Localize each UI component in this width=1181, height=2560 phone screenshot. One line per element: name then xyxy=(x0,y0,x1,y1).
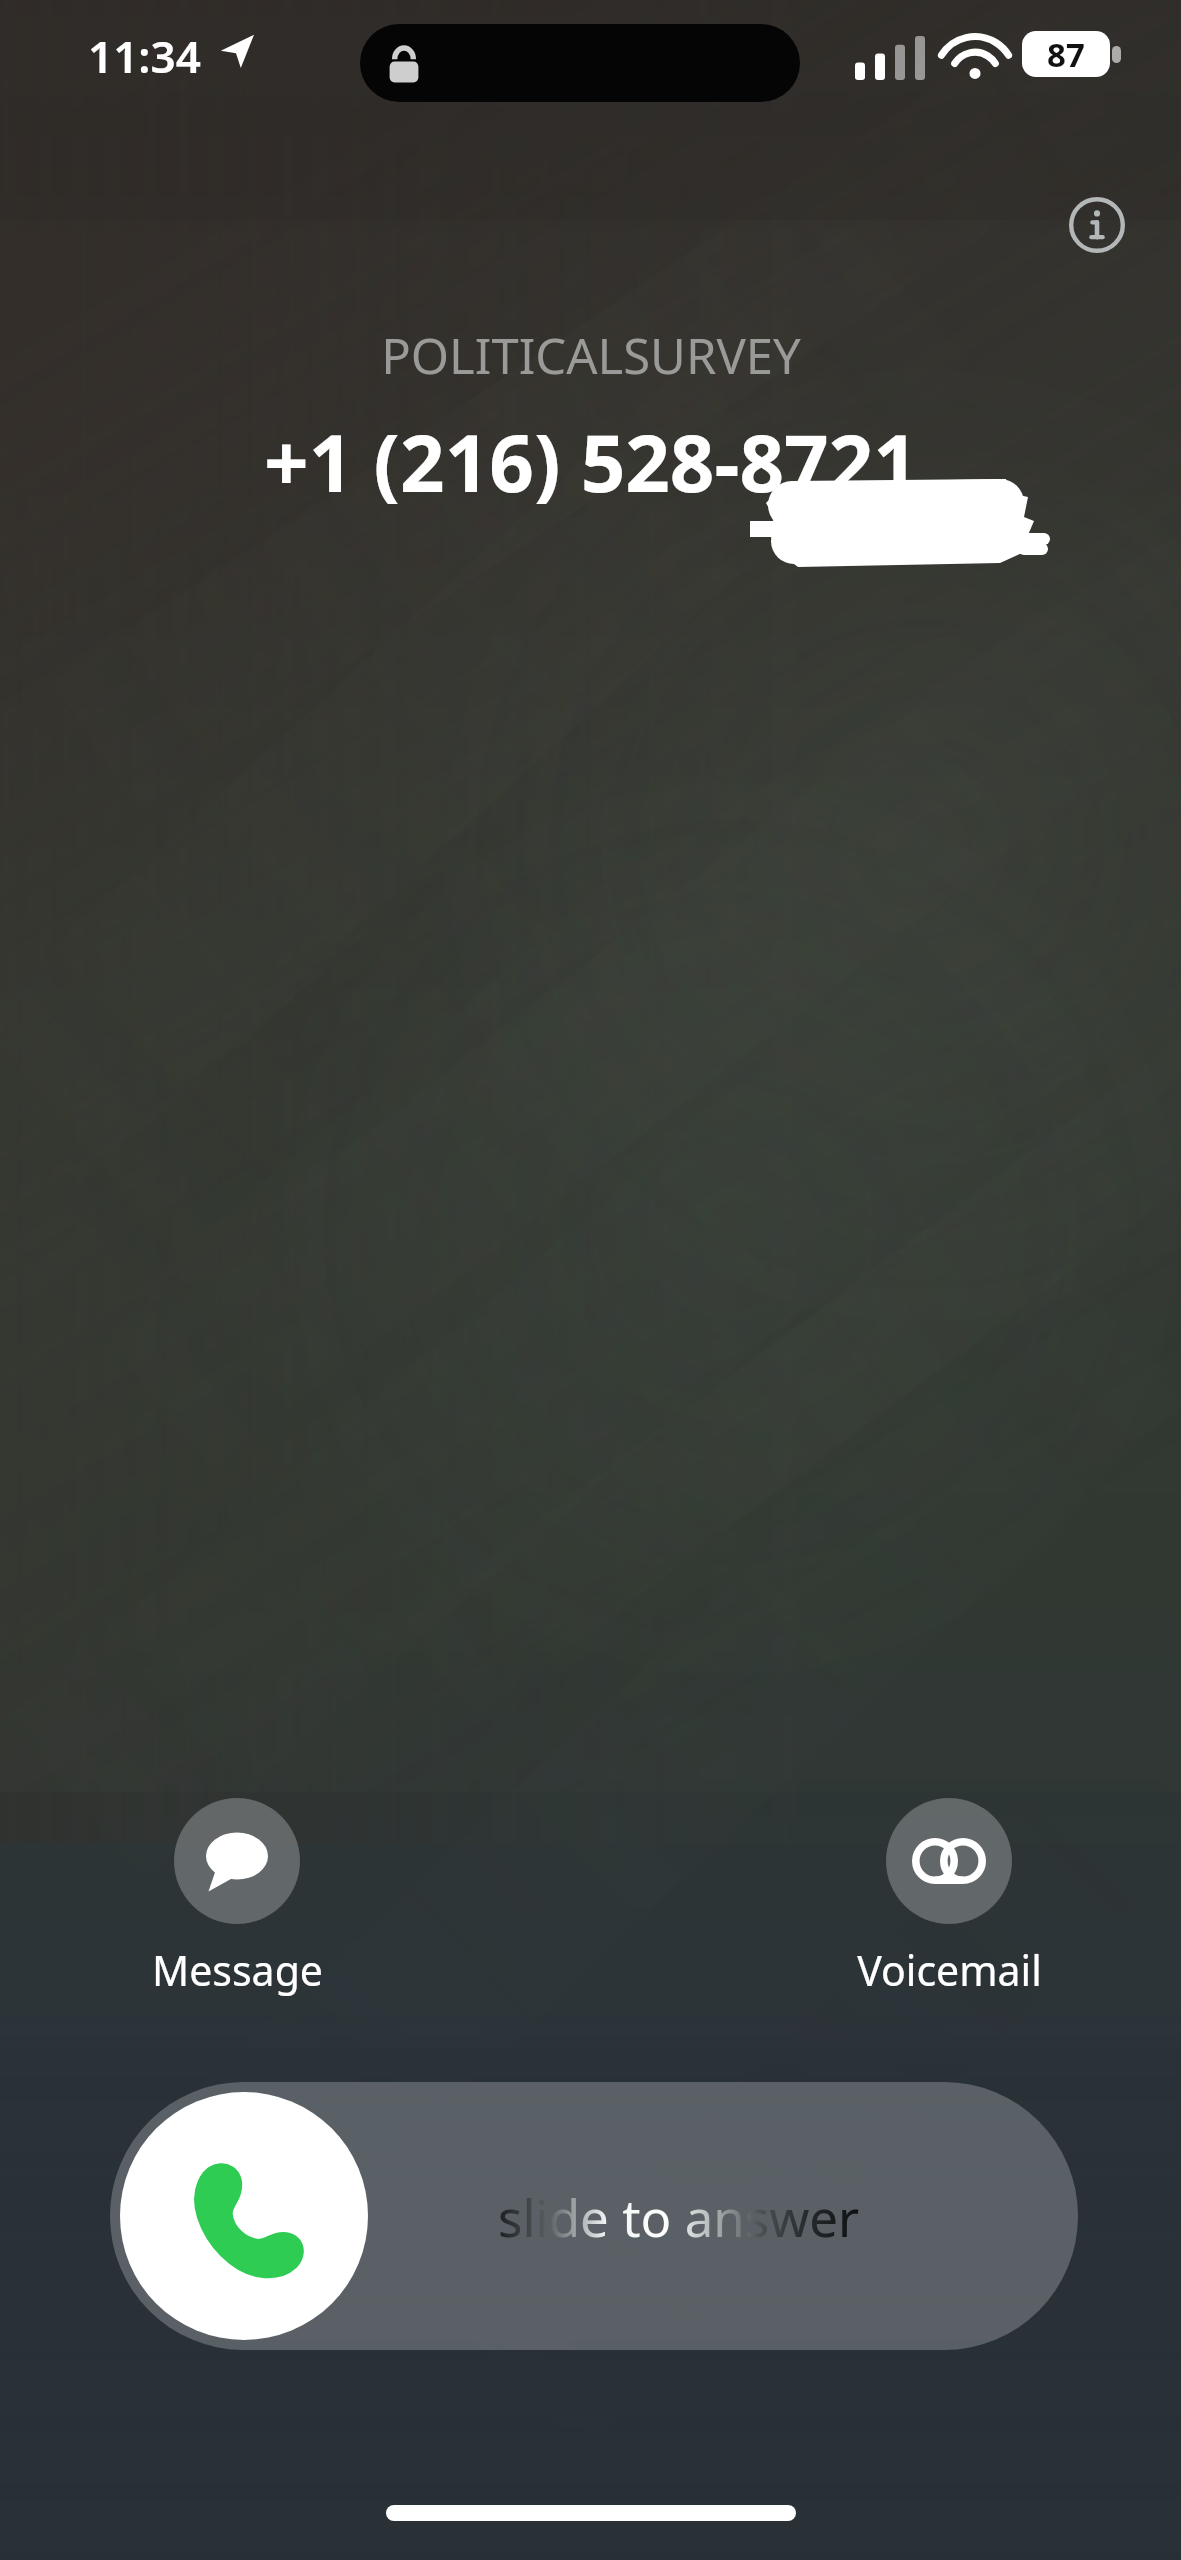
staticText: 87 xyxy=(1047,32,1085,77)
button[interactable]: Call info xyxy=(1047,175,1147,275)
button[interactable]: Message xyxy=(140,1798,334,1998)
staticText: POLITICALSURVEY xyxy=(381,322,801,389)
staticText: 11:34 xyxy=(88,26,201,86)
staticText: Voicemail xyxy=(857,1942,1042,1998)
staticText: slide to answer xyxy=(498,2182,860,2251)
button[interactable]: Answer call xyxy=(120,2092,368,2340)
button[interactable]: Voicemail xyxy=(845,1798,1053,1998)
staticText: Message xyxy=(152,1942,323,1998)
staticText: +1 (216) 528-8721 xyxy=(264,409,918,515)
button[interactable]: Slide to answer xyxy=(110,2082,1078,2350)
